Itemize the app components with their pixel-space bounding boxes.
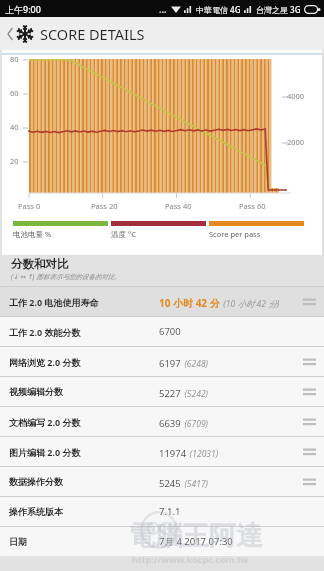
- button[interactable]: 文档编写 2.0 分数: [0, 407, 324, 436]
- staticText: http://www.kocpc.com.tw: [132, 553, 249, 565]
- staticText: 操作系统版本: [9, 506, 159, 517]
- staticText: 6197 (6248): [159, 352, 301, 371]
- staticText: ...: [159, 3, 167, 15]
- staticText: 7月 4 2017 07:30: [159, 535, 301, 548]
- staticText: 温度 °C: [111, 229, 136, 239]
- staticText: 工作 2.0 效能分数: [9, 326, 159, 338]
- button[interactable]: 工作 2.0 效能分数: [0, 317, 324, 346]
- staticText: 数据操作分数: [9, 476, 159, 487]
- button[interactable]: Compare: [301, 352, 317, 372]
- button[interactable]: 工作 2.0 电池使用寿命: [0, 287, 324, 316]
- staticText: 5227 (5242): [159, 382, 301, 401]
- button[interactable]: Compare: [301, 442, 317, 462]
- staticText: (↓ ↔ ↑) 图标表示与您的设备的对比。: [11, 272, 121, 281]
- button[interactable]: Compare: [301, 382, 317, 402]
- button[interactable]: 视频编辑分数: [0, 377, 324, 406]
- button[interactable]: Compare: [301, 472, 317, 492]
- staticText: 中華電信 4G: [196, 4, 241, 15]
- staticText: 11974 (12031): [159, 442, 301, 461]
- staticText: 分数和对比: [11, 257, 69, 271]
- button[interactable]: 网络浏览 2.0 分数: [0, 347, 324, 376]
- staticText: SCORE DETAILS: [40, 24, 145, 44]
- staticText: 图片编辑 2.0 分数: [9, 446, 159, 458]
- staticText: 台灣之星 3G: [256, 4, 301, 15]
- staticText: 60: [10, 88, 19, 98]
- staticText: 6639 (6709): [159, 412, 301, 431]
- staticText: Score per pass: [209, 229, 261, 239]
- staticText: Pass 40: [165, 201, 192, 211]
- staticText: Pass 20: [91, 201, 118, 211]
- staticText: 日期: [9, 536, 159, 547]
- staticText: 2000: [287, 137, 305, 147]
- staticText: 上午9:00: [5, 3, 41, 15]
- staticText: 10 小时 42 分 (10 小时 42 分): [159, 292, 301, 311]
- button[interactable]: 操作系统版本: [0, 497, 324, 526]
- other: App icon: [16, 25, 34, 43]
- staticText: 7.1.1: [159, 505, 301, 518]
- button[interactable]: Compare: [301, 412, 317, 432]
- staticText: 電腦王阿達: [128, 519, 263, 553]
- button[interactable]: Compare: [301, 292, 317, 312]
- staticText: 20: [10, 156, 19, 166]
- staticText: 4000: [287, 91, 305, 101]
- staticText: Pass 0: [18, 201, 41, 211]
- staticText: 文档编写 2.0 分数: [9, 416, 159, 428]
- staticText: 40: [10, 122, 19, 132]
- button[interactable]: 日期: [0, 527, 324, 556]
- button[interactable]: 图片编辑 2.0 分数: [0, 437, 324, 466]
- staticText: 网络浏览 2.0 分数: [9, 356, 159, 368]
- button[interactable]: Back: [3, 20, 16, 48]
- staticText: Pass 60: [239, 201, 266, 211]
- staticText: 电池电量 %: [13, 229, 52, 239]
- staticText: 6700: [159, 325, 301, 338]
- staticText: 80: [10, 54, 19, 64]
- button[interactable]: 数据操作分数: [0, 467, 324, 496]
- staticText: 视频编辑分数: [9, 386, 159, 397]
- staticText: 5245 (5417): [159, 472, 301, 491]
- staticText: 工作 2.0 电池使用寿命: [9, 296, 159, 308]
